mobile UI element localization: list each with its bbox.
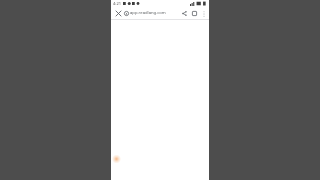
button[interactable]: Close	[114, 9, 123, 18]
button[interactable]: app.readlang.com	[124, 7, 178, 19]
button[interactable]: More options	[199, 9, 208, 18]
staticText: app.readlang.com	[130, 10, 166, 16]
button[interactable]: Bookmark	[189, 8, 199, 18]
staticText: 4:21	[113, 1, 121, 6]
button[interactable]: Share	[179, 8, 189, 18]
